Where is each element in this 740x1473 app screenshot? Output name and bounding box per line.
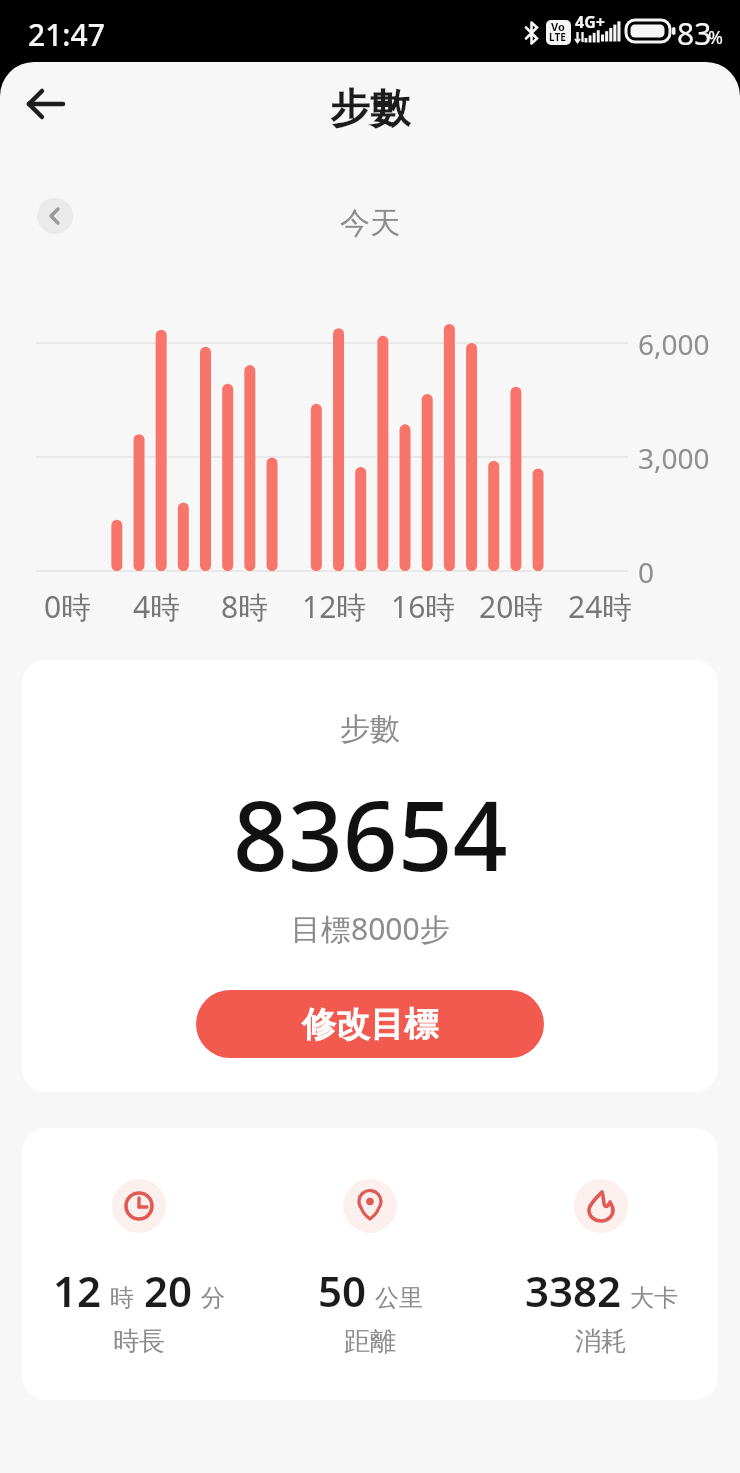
- staticText: 步數: [330, 83, 410, 133]
- staticText: %: [708, 25, 723, 50]
- staticText: 距離: [344, 1325, 396, 1358]
- staticText: 3,000: [638, 439, 710, 475]
- staticText: 4G+: [575, 11, 605, 33]
- staticText: 20時: [479, 586, 544, 622]
- staticText: 公里: [375, 1283, 423, 1313]
- staticText: 步數: [340, 710, 400, 746]
- staticText: 4時: [133, 586, 181, 622]
- staticText: 消耗: [575, 1325, 627, 1358]
- staticText: 12: [53, 1262, 102, 1319]
- staticText: Vo: [551, 19, 565, 34]
- staticText: 分: [201, 1283, 225, 1313]
- staticText: 今天: [340, 204, 400, 240]
- staticText: 3382: [525, 1262, 622, 1319]
- staticText: LTE: [549, 30, 566, 44]
- staticText: 83: [677, 13, 712, 54]
- staticText: 大卡: [630, 1283, 678, 1313]
- staticText: 21:47: [28, 14, 105, 55]
- staticText: 8時: [221, 586, 269, 622]
- button[interactable]: 修改目標: [196, 990, 544, 1058]
- staticText: 20: [144, 1262, 193, 1319]
- staticText: 0時: [44, 586, 92, 622]
- staticText: 50: [318, 1262, 367, 1319]
- button[interactable]: [16, 74, 76, 134]
- staticText: 修改目標: [302, 1003, 438, 1046]
- button[interactable]: [37, 198, 73, 234]
- staticText: 83654: [233, 768, 508, 894]
- staticText: 0: [638, 553, 655, 589]
- staticText: 6,000: [638, 325, 710, 361]
- staticText: 時長: [113, 1325, 165, 1358]
- staticText: 12時: [302, 586, 367, 622]
- staticText: 目標8000步: [291, 908, 450, 948]
- staticText: 時: [110, 1283, 134, 1313]
- staticText: 24時: [568, 586, 633, 622]
- staticText: 16時: [391, 586, 456, 622]
